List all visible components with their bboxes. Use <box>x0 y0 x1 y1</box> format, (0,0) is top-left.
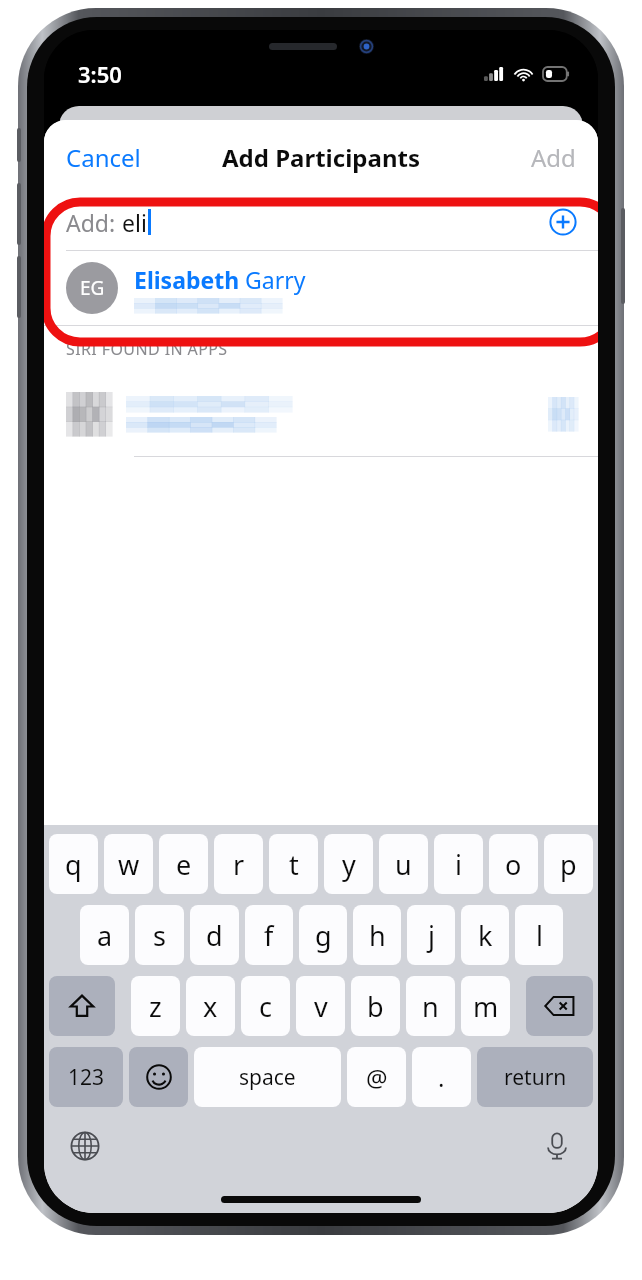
button[interactable]: e <box>159 834 208 894</box>
staticText: u <box>395 846 412 883</box>
button[interactable]: Add: <box>44 194 598 250</box>
staticText: 3:50 <box>78 59 122 89</box>
button[interactable]: 123 <box>49 1047 123 1107</box>
button[interactable]: u <box>379 834 428 894</box>
button[interactable]: k <box>461 905 509 965</box>
button[interactable]: m <box>461 976 510 1036</box>
staticText: k <box>478 917 493 954</box>
staticText: t <box>289 846 299 883</box>
staticText: Add <box>531 141 576 174</box>
button[interactable]: j <box>407 905 455 965</box>
button[interactable]: o <box>489 834 538 894</box>
staticText: o <box>505 846 522 883</box>
button[interactable]: Add contact <box>546 205 580 239</box>
button[interactable]: v <box>296 976 345 1036</box>
button[interactable]: Add <box>509 131 598 184</box>
staticText: h <box>369 917 386 954</box>
staticText: Cancel <box>66 141 141 174</box>
staticText: g <box>315 917 332 954</box>
staticText: j <box>428 917 435 954</box>
staticText: v <box>314 988 328 1025</box>
button[interactable]: z <box>131 976 180 1036</box>
button[interactable]: Shift <box>49 976 115 1036</box>
staticText: w <box>118 846 140 883</box>
button[interactable]: i <box>434 834 483 894</box>
staticText: l <box>536 917 543 954</box>
staticText: space <box>239 1063 296 1092</box>
staticText: b <box>367 988 384 1025</box>
staticText: EG <box>80 275 105 301</box>
button[interactable]: Delete <box>526 976 593 1036</box>
button[interactable] <box>44 372 598 456</box>
button[interactable]: a <box>80 905 129 965</box>
staticText: Elisabeth Garry <box>134 264 306 295</box>
button[interactable]: t <box>269 834 318 894</box>
button[interactable]: b <box>351 976 400 1036</box>
staticText: d <box>206 917 223 954</box>
staticText: p <box>560 846 577 883</box>
staticText: 123 <box>68 1063 105 1092</box>
button[interactable]: x <box>186 976 235 1036</box>
button[interactable]: d <box>190 905 239 965</box>
staticText: Add: <box>66 207 122 238</box>
button[interactable]: return <box>477 1047 593 1107</box>
staticText: @ <box>366 1061 388 1094</box>
staticText: q <box>65 846 82 883</box>
staticText: r <box>233 846 245 883</box>
staticText: n <box>422 988 439 1025</box>
staticText: a <box>97 917 113 954</box>
button[interactable]: . <box>412 1047 471 1107</box>
staticText: SIRI FOUND IN APPS <box>66 338 228 360</box>
button[interactable]: c <box>241 976 290 1036</box>
staticText: e <box>176 846 192 883</box>
staticText: m <box>473 988 499 1025</box>
button[interactable]: s <box>135 905 184 965</box>
button[interactable]: q <box>49 834 98 894</box>
button[interactable]: y <box>324 834 373 894</box>
button[interactable]: @ <box>347 1047 406 1107</box>
staticText: x <box>203 988 218 1025</box>
button[interactable]: Change keyboard <box>62 1123 108 1169</box>
button[interactable]: g <box>299 905 347 965</box>
button[interactable]: EG <box>44 251 598 325</box>
staticText: eli <box>122 207 147 238</box>
button[interactable]: f <box>245 905 293 965</box>
button[interactable]: Dictation <box>534 1123 580 1169</box>
staticText: c <box>259 988 272 1025</box>
button[interactable]: Cancel <box>44 131 163 184</box>
button[interactable]: w <box>104 834 153 894</box>
button[interactable]: p <box>544 834 593 894</box>
button[interactable]: r <box>214 834 263 894</box>
button[interactable]: l <box>515 905 563 965</box>
staticText: f <box>264 917 274 954</box>
staticText: s <box>153 917 166 954</box>
button[interactable]: h <box>353 905 401 965</box>
staticText: i <box>455 846 462 883</box>
button[interactable]: Emoji <box>129 1047 188 1107</box>
staticText: Add Participants <box>222 141 420 174</box>
button[interactable]: n <box>406 976 455 1036</box>
staticText: z <box>149 988 162 1025</box>
staticText: return <box>504 1063 567 1092</box>
staticText: y <box>342 846 356 883</box>
button[interactable]: space <box>194 1047 341 1107</box>
staticText: . <box>438 1061 445 1094</box>
